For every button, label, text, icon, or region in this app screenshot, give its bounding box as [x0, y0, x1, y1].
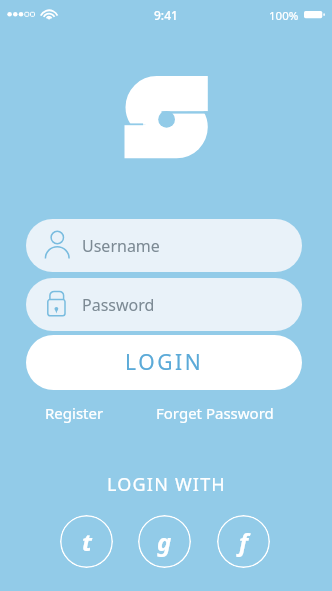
button[interactable]: Login with Facebook — [217, 515, 270, 568]
staticText: Password — [82, 294, 155, 316]
staticText: 100% — [269, 8, 299, 24]
staticText: 9:41 — [154, 7, 178, 23]
button[interactable]: LOGIN — [26, 335, 302, 390]
button[interactable]: Login with Google — [138, 515, 191, 568]
button[interactable]: Username — [26, 219, 302, 272]
staticText: Username — [82, 235, 160, 257]
staticText: Forget Password — [156, 403, 274, 423]
button[interactable]: Register — [40, 400, 109, 426]
button[interactable]: Login with Twitter — [60, 515, 113, 568]
staticText: Register — [45, 403, 104, 423]
staticText: g — [157, 525, 172, 558]
staticText: LOGIN — [125, 348, 204, 377]
button[interactable]: Password — [26, 278, 302, 331]
staticText: f — [239, 525, 248, 558]
button[interactable]: Forget Password — [151, 400, 279, 426]
staticText: t — [82, 525, 92, 558]
staticText: LOGIN WITH — [107, 472, 226, 497]
